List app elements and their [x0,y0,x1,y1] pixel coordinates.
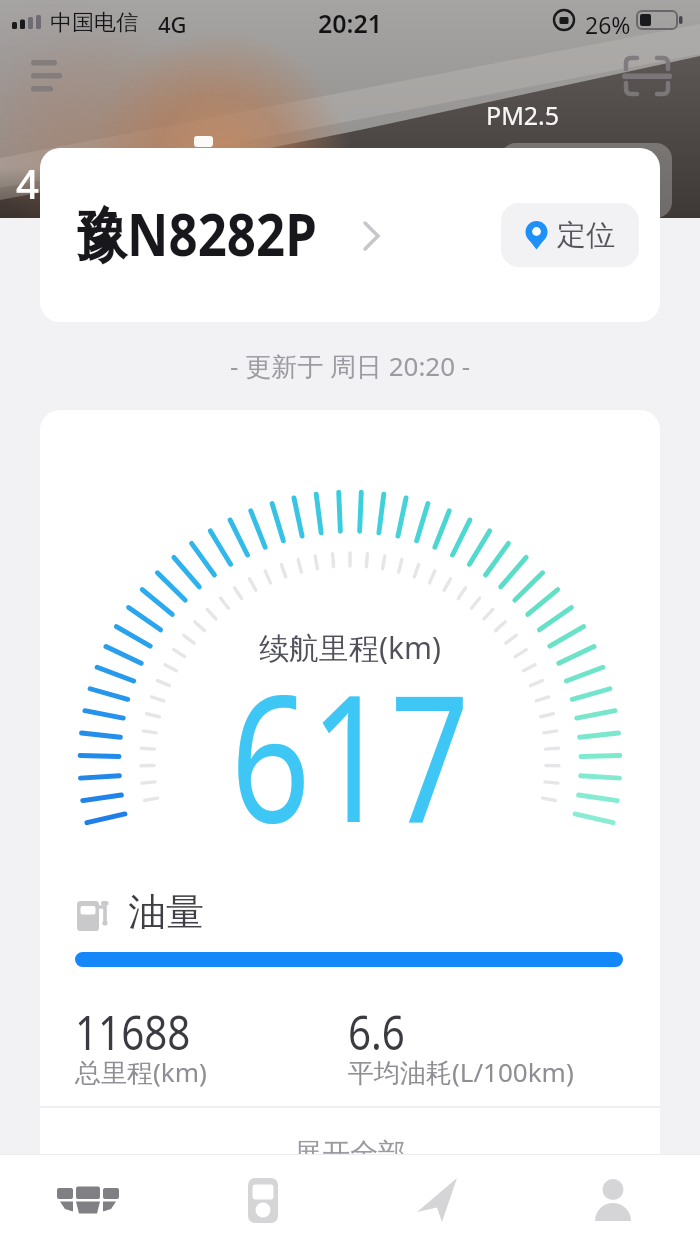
staticText: 20:21 [318,6,383,40]
staticText: 总里程(km) [75,1054,207,1090]
button[interactable]: 展开全部 [294,1136,406,1171]
staticText: 豫N8282P [76,192,317,274]
staticText: PM2.5 [486,98,560,132]
staticText: 平均油耗(L/100km) [348,1054,574,1090]
staticText: 展开全部 [294,1136,406,1171]
button[interactable] [0,1155,175,1245]
staticText: 4 [16,156,39,210]
staticText: 续航里程(km) [259,627,442,668]
staticText: 中国电信 [50,9,138,37]
button[interactable]: 定位 [501,203,639,267]
staticText: 油量 [128,888,204,936]
staticText: - 更新于 周日 20:20 - [230,348,471,384]
button[interactable]: 豫N8282P [40,148,660,322]
staticText: 617 [231,634,470,874]
button[interactable] [525,1155,700,1245]
button[interactable] [350,1155,525,1245]
staticText: 定位 [557,217,615,254]
button[interactable] [175,1155,350,1245]
staticText: 26% [585,9,631,40]
staticText: 11688 [75,999,191,1064]
staticText: 4G [158,9,187,39]
staticText: 6.6 [348,999,405,1064]
